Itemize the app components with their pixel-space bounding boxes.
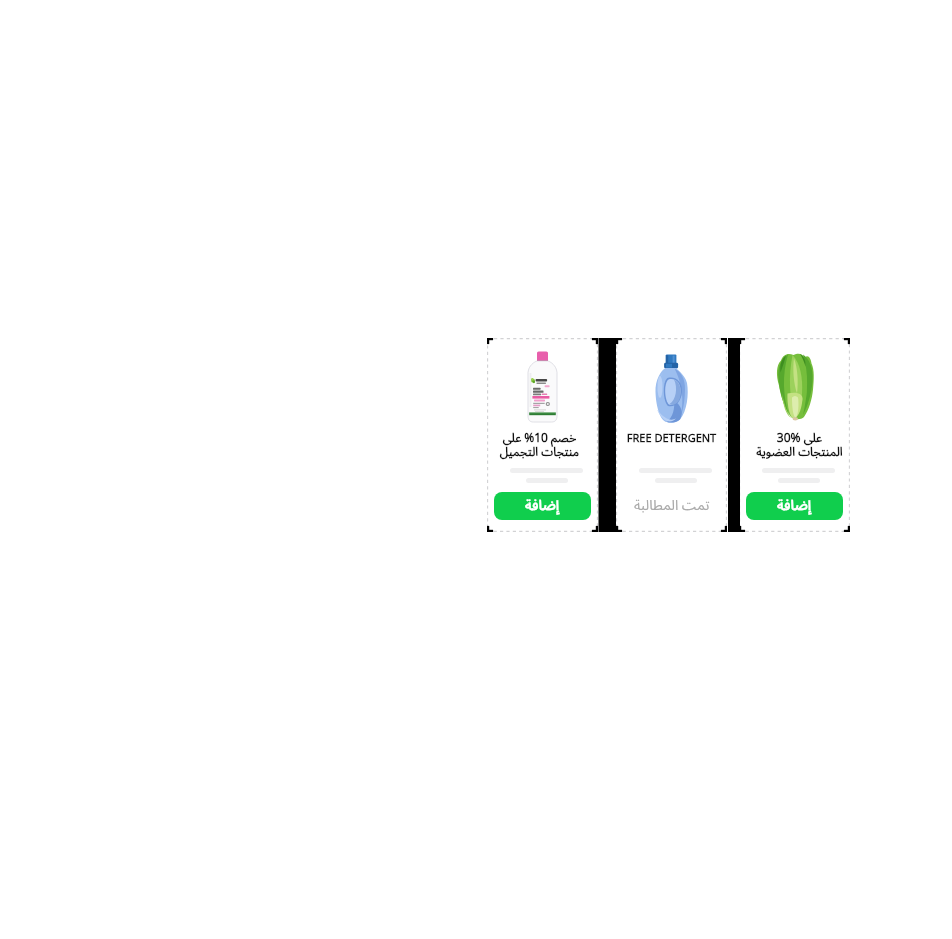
button[interactable]: FREE DETERGENT bbox=[616, 338, 727, 532]
staticText: 30% على المنتجات العضوية bbox=[744, 433, 855, 461]
button[interactable]: إضافة bbox=[746, 492, 843, 520]
staticText: تمت المطالبة bbox=[634, 491, 710, 519]
staticText: إضافة bbox=[525, 492, 560, 518]
button[interactable]: 30% على المنتجات العضوية bbox=[739, 338, 850, 532]
staticText: خصم 10% على منتجات التجميل bbox=[484, 433, 595, 461]
button[interactable]: خصم 10% على منتجات التجميل bbox=[487, 338, 598, 532]
staticText: إضافة bbox=[777, 492, 812, 518]
staticText: FREE DETERGENT bbox=[616, 433, 727, 447]
button[interactable]: إضافة bbox=[494, 492, 591, 520]
button[interactable]: تمت المطالبة bbox=[616, 492, 727, 520]
